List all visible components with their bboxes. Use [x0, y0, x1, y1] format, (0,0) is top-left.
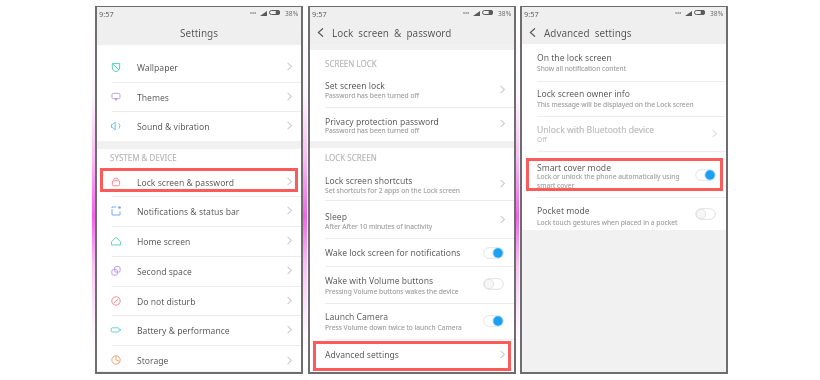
staticText: Password has been turned off — [325, 126, 420, 135]
staticText: Privacy protection password — [325, 116, 439, 128]
staticText: Off — [537, 135, 547, 144]
staticText: Launch Camera — [325, 311, 388, 323]
button[interactable]: Do not disturb — [97, 286, 301, 316]
button[interactable]: Sleep — [310, 201, 514, 238]
button[interactable]: Switch on — [695, 169, 716, 181]
button[interactable]: Switch on — [483, 315, 504, 327]
staticText: Lock screen shortcuts — [325, 175, 413, 187]
staticText: Advanced settings — [325, 349, 399, 361]
staticText: Show all notification content — [537, 64, 627, 73]
staticText: After After 10 minutes of inactivity — [325, 222, 433, 231]
staticText: Password has been turned off — [325, 91, 420, 100]
staticText: Pressing Volume buttons wakes the device — [325, 287, 459, 296]
staticText: Wallpaper — [137, 62, 178, 74]
button[interactable]: Unlock with Bluetooth device — [522, 116, 726, 151]
button[interactable]: Back — [526, 26, 539, 39]
button[interactable]: Advanced settings — [310, 339, 514, 371]
button[interactable]: Notifications & status bar — [97, 196, 301, 226]
staticText: Press Volume down twice to launch Camera — [325, 323, 462, 332]
staticText: Sound & vibration — [137, 121, 210, 133]
staticText: Lock or unlock the phone automatically u… — [537, 172, 685, 189]
staticText: Second space — [137, 266, 192, 278]
staticText: Lock screen owner info — [537, 88, 630, 100]
button[interactable]: Home screen — [97, 226, 301, 256]
button[interactable]: Storage — [97, 345, 301, 371]
staticText: On the lock screen — [537, 52, 612, 64]
staticText: Sleep — [325, 211, 347, 223]
staticText: SCREEN LOCK — [325, 58, 377, 69]
button[interactable]: Lock screen shortcuts — [310, 166, 514, 201]
staticText: Set screen lock — [325, 80, 385, 92]
staticText: 9:57 — [99, 9, 114, 19]
button[interactable]: Wake lock screen for notifications — [310, 238, 514, 267]
button[interactable]: Lock screen owner info — [522, 81, 726, 116]
staticText: Home screen — [137, 236, 191, 248]
button[interactable]: Second space — [97, 256, 301, 286]
button[interactable]: Launch Camera — [310, 303, 514, 339]
button[interactable]: Switch off — [483, 278, 504, 290]
staticText: LOCK SCREEN — [325, 152, 377, 163]
staticText: This message will be displayed on the Lo… — [537, 100, 694, 109]
staticText: Set shortcuts for 2 apps on the Lock scr… — [325, 186, 460, 195]
button[interactable]: Back — [314, 26, 327, 39]
staticText: 38% — [710, 9, 724, 18]
staticText: Advanced settings — [544, 26, 632, 39]
staticText: Do not disturb — [137, 296, 196, 308]
button[interactable]: Set screen lock — [310, 72, 514, 108]
staticText: Wake lock screen for notifications — [325, 247, 461, 259]
button[interactable]: Lock screen & password — [97, 167, 301, 197]
staticText: Pocket mode — [537, 205, 590, 217]
button[interactable]: Themes — [97, 82, 301, 112]
staticText: 9:57 — [524, 9, 539, 19]
staticText: Battery & performance — [137, 325, 230, 337]
staticText: 38% — [498, 9, 512, 18]
staticText: 38% — [285, 9, 299, 18]
staticText: Themes — [137, 92, 169, 104]
staticText: Wake with Volume buttons — [325, 275, 434, 287]
staticText: Settings — [180, 26, 219, 40]
button[interactable]: On the lock screen — [522, 44, 726, 81]
button[interactable]: Privacy protection password — [310, 107, 514, 141]
staticText: Lock touch gestures when placed in a poc… — [537, 218, 678, 227]
staticText: Lock screen & password — [137, 177, 234, 189]
staticText: Smart cover mode — [537, 162, 611, 174]
button[interactable]: Wallpaper — [97, 52, 301, 82]
staticText: Storage — [137, 355, 169, 367]
staticText: 9:57 — [312, 9, 327, 19]
button[interactable]: Sound & vibration — [97, 111, 301, 141]
button[interactable]: Battery & performance — [97, 315, 301, 345]
button[interactable]: Smart cover mode — [522, 151, 726, 197]
staticText: Lock screen & password — [332, 26, 452, 39]
button[interactable]: Pocket mode — [522, 197, 726, 230]
staticText: Unlock with Bluetooth device — [537, 124, 655, 136]
button[interactable]: Wake with Volume buttons — [310, 266, 514, 302]
button[interactable]: Switch off — [695, 208, 716, 220]
staticText: Notifications & status bar — [137, 206, 240, 218]
staticText: SYSTEM & DEVICE — [110, 152, 177, 163]
button[interactable]: Switch on — [483, 247, 504, 259]
